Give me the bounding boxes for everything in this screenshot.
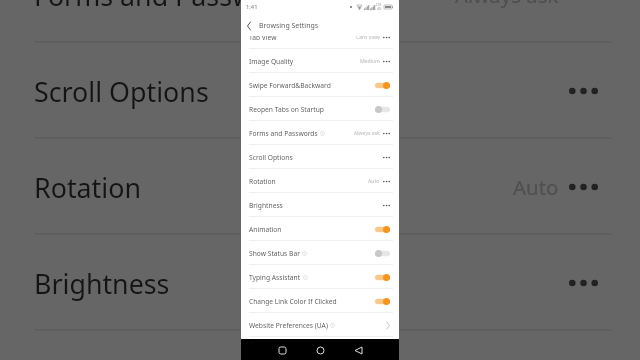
button[interactable]: Animation — [241, 217, 399, 241]
button[interactable]: Recent apps — [272, 340, 292, 360]
button[interactable]: Scroll Options — [2, 43, 634, 139]
staticText: 4G — [377, 7, 382, 11]
staticText: Brightness — [34, 265, 170, 302]
button[interactable]: Back — [241, 18, 256, 33]
staticText: Typing Assistant — [249, 273, 301, 282]
button[interactable]: Brightness — [241, 193, 399, 217]
button[interactable]: Home — [310, 340, 330, 360]
button[interactable]: Back — [348, 340, 368, 360]
staticText: Website Preferences (UA) — [249, 321, 328, 330]
staticText: Auto — [368, 178, 380, 185]
button[interactable]: Tab View — [241, 25, 399, 49]
staticText: Medium — [360, 58, 380, 65]
staticText: Always ask — [455, 0, 559, 9]
button[interactable]: Swipe Forward&Backward — [241, 73, 399, 97]
staticText: 1:41 — [246, 3, 258, 11]
staticText: Reopen Tabs on Startup — [249, 105, 324, 114]
button[interactable]: Rotation — [2, 139, 634, 235]
staticText: Brightness — [249, 201, 283, 210]
button[interactable]: Animation — [2, 331, 634, 360]
staticText: Browsing Settings — [259, 21, 319, 31]
button[interactable]: Brightness — [2, 235, 634, 331]
button[interactable]: Rotation — [241, 169, 399, 193]
staticText: Rotation — [249, 177, 276, 186]
staticText: Rotation — [34, 169, 141, 206]
button[interactable]: Show Status Bar — [241, 241, 399, 265]
staticText: Change Link Color If Clicked — [249, 297, 337, 306]
staticText: Auto — [513, 173, 559, 201]
button[interactable]: Image Quality — [241, 49, 399, 73]
staticText: Swipe Forward&Backward — [249, 81, 331, 90]
staticText: Show Status Bar — [249, 249, 300, 258]
staticText: LTE — [376, 3, 382, 7]
button[interactable]: Forms and Passwords — [241, 121, 399, 145]
staticText: Tab View — [249, 33, 277, 42]
button[interactable]: Website Preferences (UA) — [241, 313, 399, 337]
staticText: Scroll Options — [34, 73, 209, 110]
staticText: Forms and Passwords — [34, 0, 310, 14]
staticText: Forms and Passwords — [249, 129, 318, 138]
staticText: Scroll Options — [249, 153, 293, 162]
button[interactable]: Reopen Tabs on Startup — [241, 97, 399, 121]
staticText: Animation — [249, 225, 282, 234]
button[interactable]: Change Link Color If Clicked — [241, 289, 399, 313]
button[interactable]: Typing Assistant — [241, 265, 399, 289]
button[interactable]: Forms and Passwords — [2, 0, 634, 43]
staticText: Always ask — [354, 130, 380, 137]
button[interactable]: Scroll Options — [241, 145, 399, 169]
staticText: Image Quality — [249, 57, 294, 66]
staticText: Card View — [356, 34, 380, 41]
